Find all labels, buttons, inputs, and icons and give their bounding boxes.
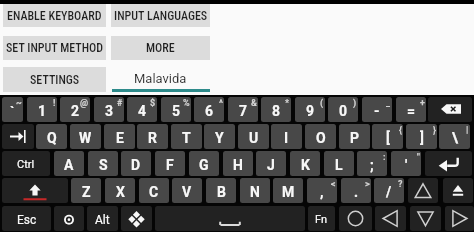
button[interactable]: S	[88, 151, 118, 176]
staticText: Z	[82, 184, 91, 200]
button[interactable]: Backspace	[428, 97, 472, 122]
staticText: +	[420, 98, 425, 109]
staticText: Fn	[315, 213, 328, 226]
button[interactable]: 0	[328, 97, 358, 122]
staticText: Y	[215, 130, 224, 146]
staticText: &	[251, 98, 257, 109]
button[interactable]: Down	[410, 206, 441, 231]
staticText: B	[217, 184, 226, 200]
button[interactable]: K	[290, 151, 320, 176]
button[interactable]: Fn	[308, 206, 335, 231]
button[interactable]: Alt	[87, 206, 118, 231]
button[interactable]: \	[439, 124, 470, 149]
button[interactable]: F	[155, 151, 185, 176]
button[interactable]: Back	[375, 206, 406, 231]
staticText: "	[417, 152, 420, 163]
button[interactable]: Eject	[443, 178, 473, 203]
button[interactable]: -	[362, 97, 392, 122]
staticText: Esc	[17, 213, 37, 227]
button[interactable]: R	[137, 124, 168, 149]
button[interactable]: O	[305, 124, 336, 149]
button[interactable]: C	[139, 178, 169, 203]
button[interactable]: Move	[121, 206, 152, 231]
button[interactable]: U	[238, 124, 269, 149]
staticText: W	[79, 130, 92, 146]
button[interactable]: 5	[161, 97, 191, 122]
staticText: K	[301, 157, 310, 173]
button[interactable]: Space	[155, 206, 305, 231]
button[interactable]: A	[54, 151, 84, 176]
button[interactable]: SET INPUT METHOD	[3, 36, 106, 60]
button[interactable]: Z	[71, 178, 101, 203]
button[interactable]: G	[189, 151, 219, 176]
button[interactable]: 9	[295, 97, 325, 122]
staticText: >	[365, 179, 370, 190]
staticText: INPUT LANGUAGES	[114, 9, 208, 23]
button[interactable]: W	[70, 124, 101, 149]
button[interactable]: /	[374, 178, 404, 203]
button[interactable]: D	[121, 151, 151, 176]
staticText: 3	[105, 103, 114, 119]
button[interactable]: INPUT LANGUAGES	[111, 4, 210, 27]
button[interactable]: V	[172, 178, 202, 203]
button[interactable]: 8	[261, 97, 291, 122]
button[interactable]: Ctrl	[2, 151, 50, 176]
button[interactable]: =	[396, 97, 426, 122]
staticText: 1	[38, 103, 47, 119]
button[interactable]: Up	[408, 178, 438, 203]
button[interactable]: ;	[357, 151, 387, 176]
staticText: O	[316, 130, 326, 146]
button[interactable]: Shift	[2, 178, 68, 203]
button[interactable]: MORE	[111, 36, 210, 60]
staticText: L	[335, 157, 343, 173]
button[interactable]: 2	[60, 97, 90, 122]
button[interactable]: 1	[27, 97, 57, 122]
staticText: I	[284, 130, 289, 146]
button[interactable]: SETTINGS	[3, 67, 106, 92]
button[interactable]: 6	[194, 97, 224, 122]
button[interactable]: T	[171, 124, 202, 149]
button[interactable]: ]	[406, 124, 437, 149]
button[interactable]: J	[256, 151, 286, 176]
button[interactable]: 7	[228, 97, 258, 122]
button[interactable]: H	[223, 151, 253, 176]
button[interactable]: Y	[204, 124, 235, 149]
button[interactable]: X	[105, 178, 135, 203]
button[interactable]: M	[273, 178, 303, 203]
button[interactable]: 3	[94, 97, 124, 122]
staticText: R	[148, 130, 157, 146]
button[interactable]: 4	[127, 97, 157, 122]
staticText: Ctrl	[17, 158, 35, 171]
button[interactable]: B	[206, 178, 236, 203]
button[interactable]: Enter	[425, 151, 472, 176]
button[interactable]: P	[339, 124, 370, 149]
button[interactable]: N	[240, 178, 270, 203]
button[interactable]: Esc	[2, 206, 51, 231]
staticText: -	[374, 103, 380, 119]
staticText: [	[386, 130, 390, 146]
button[interactable]: `	[2, 97, 23, 122]
button[interactable]: Home	[339, 206, 372, 231]
button[interactable]: '	[391, 151, 421, 176]
button[interactable]: ENABLE KEYBOARD	[3, 4, 106, 27]
button[interactable]: L	[324, 151, 354, 176]
staticText: '	[405, 157, 408, 173]
button[interactable]: Q	[36, 124, 67, 149]
staticText: .	[354, 184, 359, 200]
staticText: %	[183, 98, 190, 109]
button[interactable]: [	[372, 124, 403, 149]
button[interactable]: Forward	[445, 206, 474, 231]
button[interactable]: Tab	[2, 124, 34, 149]
button[interactable]: ,	[307, 178, 337, 203]
staticText: 7	[239, 103, 248, 119]
button[interactable]: Malavida	[111, 67, 210, 92]
staticText: Q	[47, 130, 57, 146]
staticText: V	[182, 184, 192, 200]
button[interactable]: Settings	[54, 206, 84, 231]
staticText: /	[386, 184, 392, 200]
staticText: !	[53, 98, 56, 109]
button[interactable]: E	[104, 124, 135, 149]
button[interactable]: .	[341, 178, 371, 203]
button[interactable]: I	[271, 124, 302, 149]
staticText: ?	[398, 179, 403, 190]
